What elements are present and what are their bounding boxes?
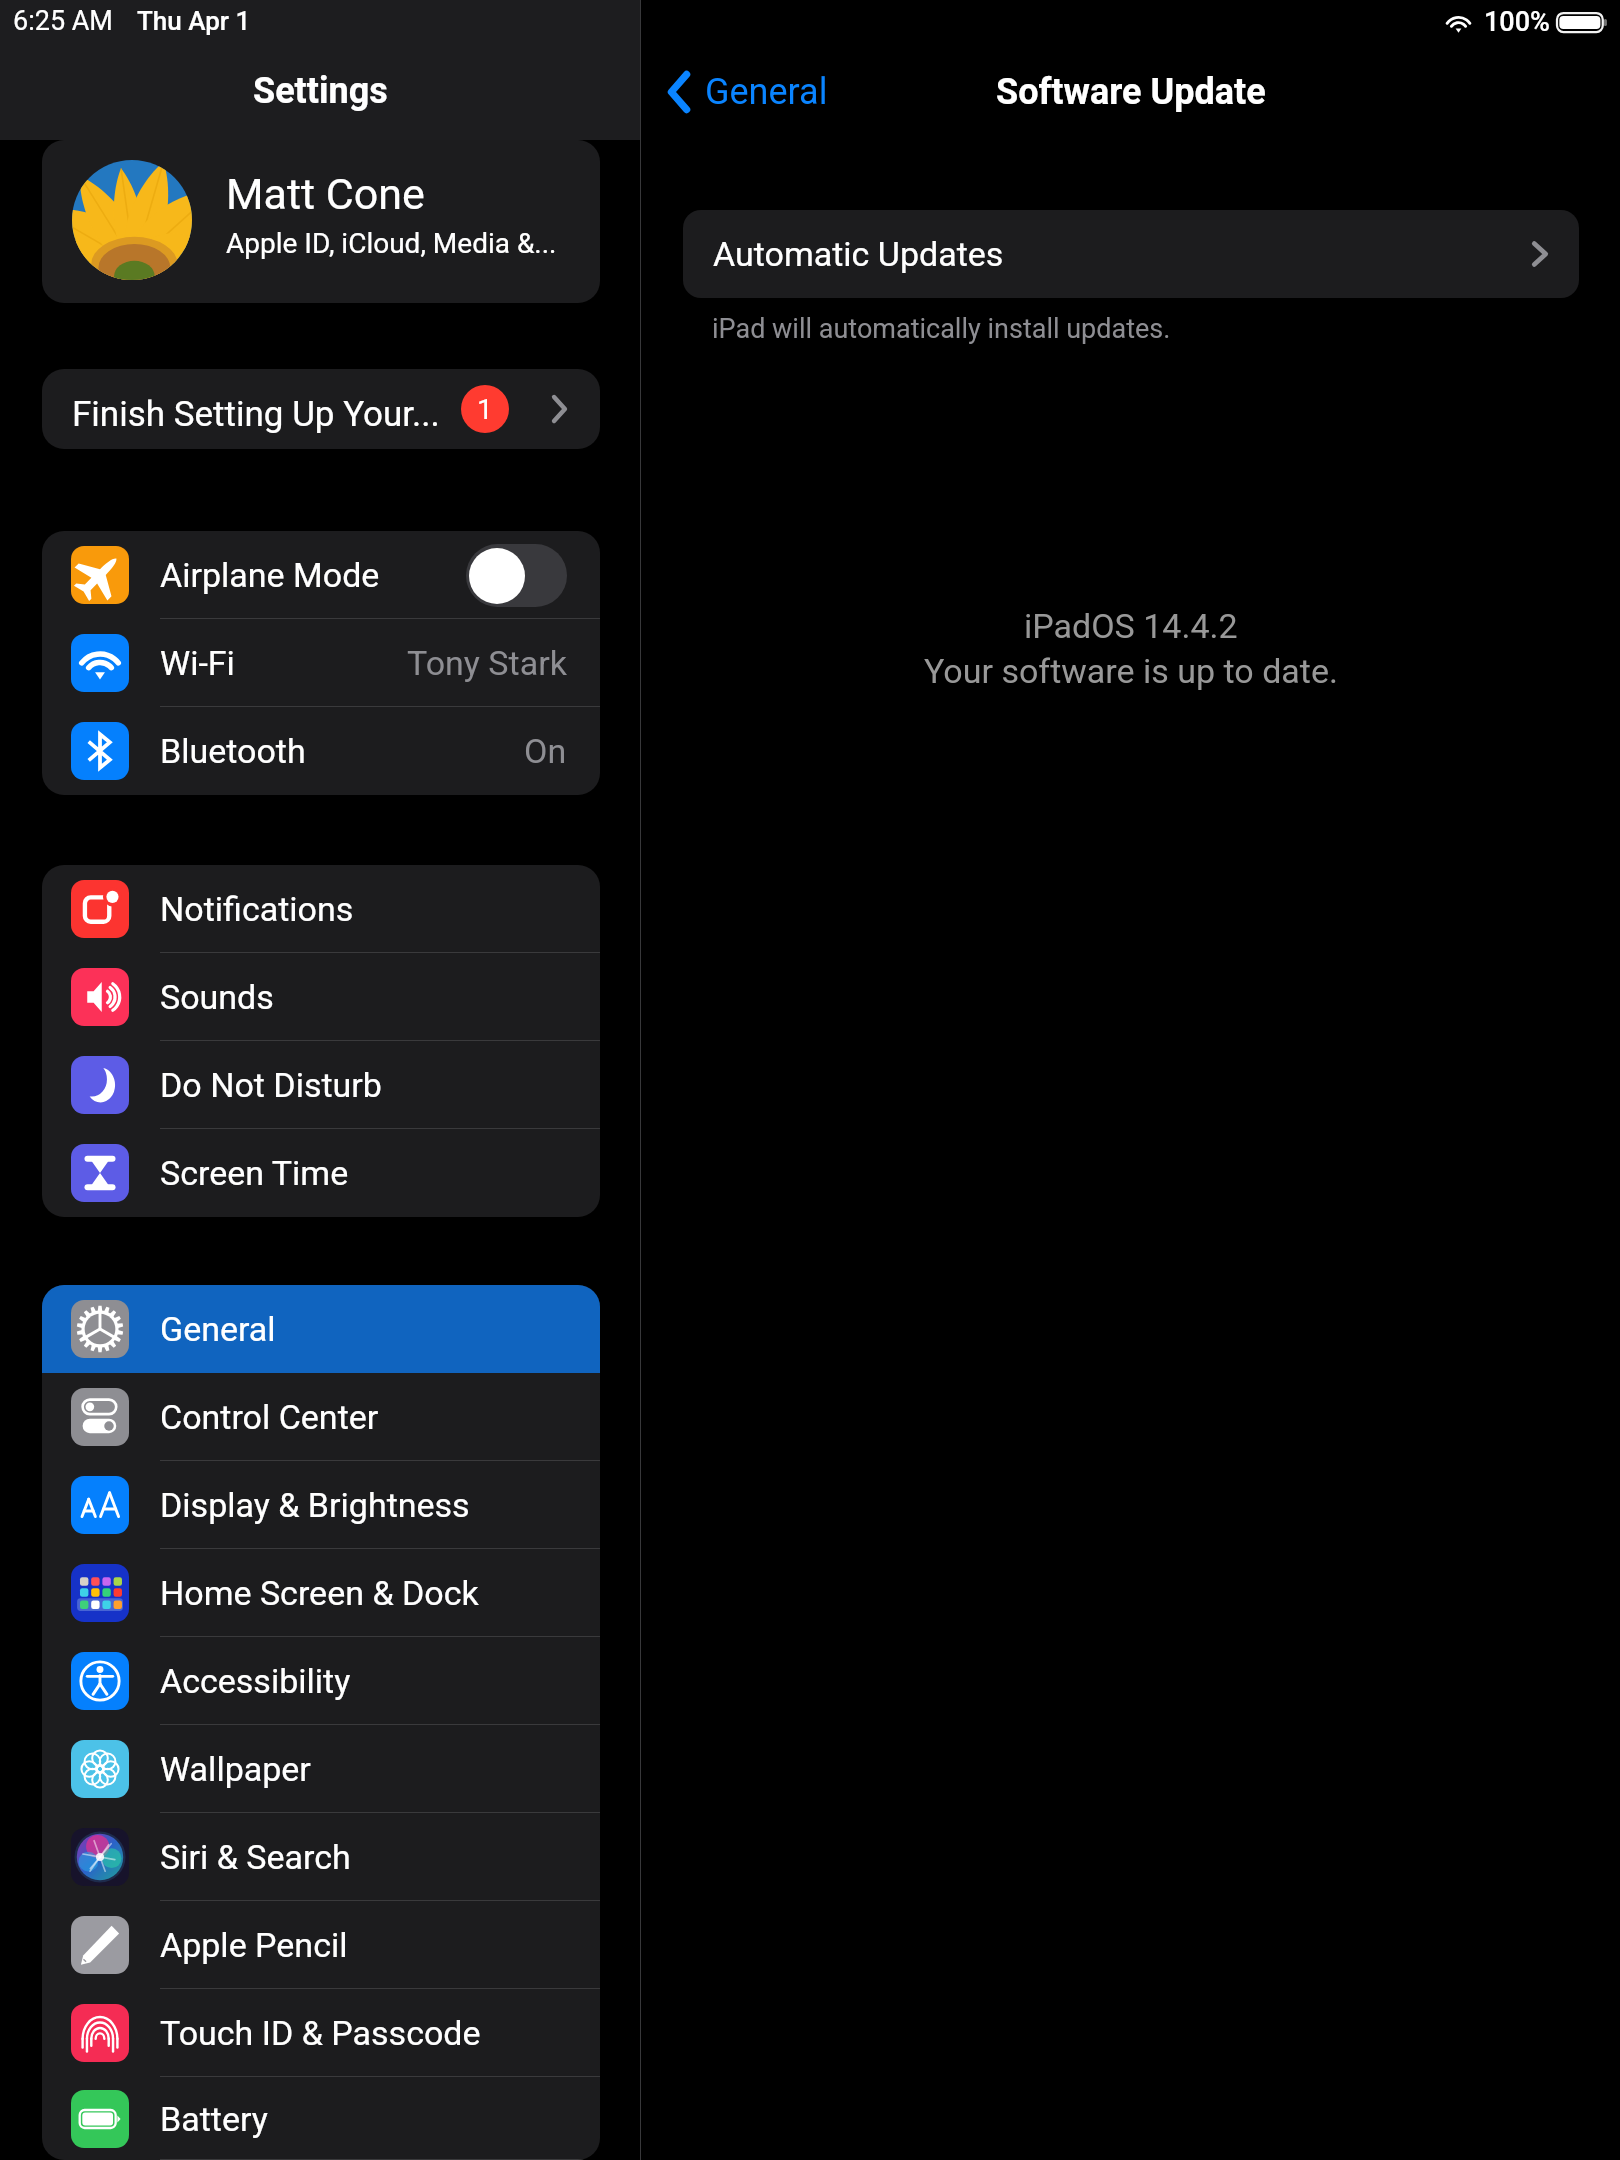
staticText: Matt Cone: [226, 169, 425, 219]
staticText: On: [524, 731, 567, 771]
staticText: Sounds: [160, 977, 274, 1017]
staticText: iPadOS 14.4.2: [1024, 606, 1238, 646]
staticText: Wallpaper: [160, 1749, 311, 1789]
button[interactable]: Battery: [42, 2077, 600, 2160]
staticText: Wi-Fi: [160, 643, 235, 683]
button[interactable]: Apple Pencil: [42, 1901, 600, 1989]
staticText: 1: [477, 393, 493, 426]
staticText: General: [705, 71, 828, 113]
staticText: Display & Brightness: [160, 1485, 470, 1525]
button[interactable]: Accessibility: [42, 1637, 600, 1725]
staticText: Automatic Updates: [713, 234, 1004, 274]
button[interactable]: Automatic Updates: [683, 210, 1579, 298]
button[interactable]: Matt Cone: [42, 140, 600, 303]
staticText: General: [160, 1309, 276, 1349]
staticText: Software Update: [996, 71, 1266, 113]
staticText: Touch ID & Passcode: [160, 2013, 481, 2053]
staticText: 6:25 AM: [13, 5, 113, 37]
staticText: Siri & Search: [160, 1837, 351, 1877]
button[interactable]: Siri & Search: [42, 1813, 600, 1901]
staticText: Settings: [253, 70, 388, 112]
button[interactable]: Wallpaper: [42, 1725, 600, 1813]
button[interactable]: Sounds: [42, 953, 600, 1041]
staticText: Do Not Disturb: [160, 1065, 382, 1105]
button[interactable]: Display & Brightness: [42, 1461, 600, 1549]
staticText: 100%: [1484, 6, 1550, 38]
button[interactable]: Notifications: [42, 865, 600, 953]
staticText: Notifications: [160, 889, 354, 929]
staticText: Your software is up to date.: [924, 651, 1338, 691]
staticText: Apple Pencil: [160, 1925, 348, 1965]
button[interactable]: Back to General: [663, 67, 832, 117]
button[interactable]: Bluetooth: [42, 707, 600, 795]
button[interactable]: General: [42, 1285, 600, 1373]
staticText: Apple ID, iCloud, Media &...: [226, 227, 557, 260]
staticText: Bluetooth: [160, 731, 306, 771]
staticText: iPad will automatically install updates.: [712, 313, 1171, 345]
button[interactable]: Touch ID & Passcode: [42, 1989, 600, 2077]
button[interactable]: Airplane Mode: [42, 531, 600, 619]
staticText: Tony Stark: [407, 643, 567, 683]
button[interactable]: Do Not Disturb: [42, 1041, 600, 1129]
button[interactable]: Wi-Fi: [42, 619, 600, 707]
staticText: Screen Time: [160, 1153, 349, 1193]
staticText: Accessibility: [160, 1661, 351, 1701]
button[interactable]: Screen Time: [42, 1129, 600, 1217]
staticText: Airplane Mode: [160, 555, 380, 595]
button[interactable]: Home Screen & Dock: [42, 1549, 600, 1637]
staticText: Finish Setting Up Your...: [72, 394, 440, 435]
button[interactable]: Airplane Mode toggle, off: [466, 544, 567, 607]
staticText: Thu Apr 1: [137, 6, 251, 36]
staticText: Control Center: [160, 1397, 379, 1437]
button[interactable]: Finish Setting Up Your...: [42, 369, 600, 449]
staticText: Home Screen & Dock: [160, 1573, 479, 1613]
staticText: Battery: [160, 2099, 268, 2139]
button[interactable]: Control Center: [42, 1373, 600, 1461]
